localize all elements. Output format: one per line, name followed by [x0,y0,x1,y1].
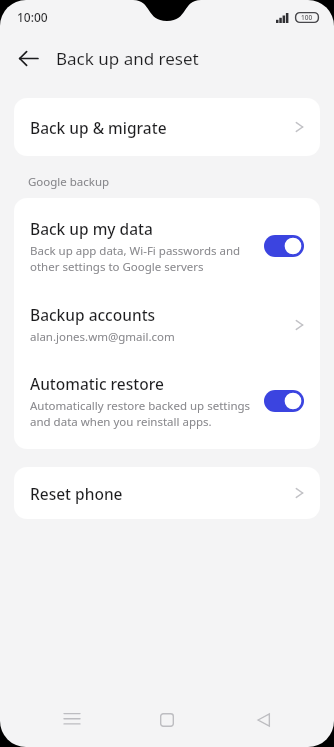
staticText: 100 [301,13,313,22]
button[interactable]: Backup accounts [14,296,320,353]
staticText: alan.jones.wm@gmail.com [30,329,175,345]
button[interactable]: Home [143,696,191,744]
button[interactable]: Back [239,696,287,744]
staticText: Automatic restore [30,373,164,394]
button[interactable]: Back [8,38,48,78]
staticText: Back up and reset [56,47,199,70]
staticText: Google backup [28,174,110,190]
button[interactable]: Back up my data [14,208,320,284]
staticText: 10:00 [17,9,48,25]
button[interactable]: Reset phone [14,467,320,519]
button[interactable]: Recent apps [48,696,96,744]
button[interactable]: Automatic restore [14,365,320,437]
button[interactable]: Toggle on [264,235,304,257]
staticText: Back up app data, Wi-Fi passwords and ot… [30,243,252,274]
staticText: Back up my data [30,218,153,239]
button[interactable]: Back up & migrate [14,98,320,156]
button[interactable]: Toggle on [264,390,304,412]
staticText: Backup accounts [30,304,156,325]
staticText: Back up & migrate [30,117,295,138]
staticText: Reset phone [30,483,295,504]
staticText: Automatically restore backed up settings… [30,398,252,429]
